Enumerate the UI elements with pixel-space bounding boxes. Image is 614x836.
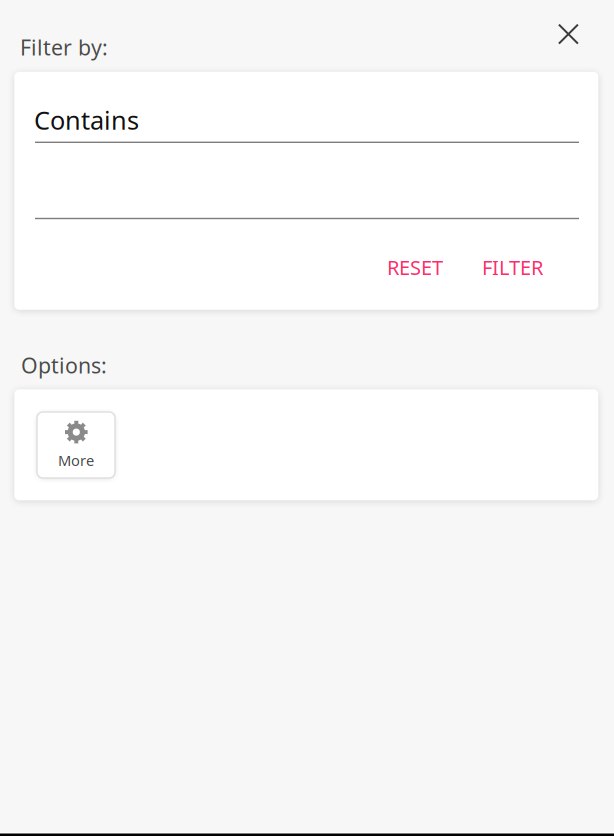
button[interactable]: Close: [544, 10, 592, 58]
staticText: Options:: [21, 351, 107, 379]
button[interactable]: More: [37, 412, 115, 478]
staticText: More: [58, 450, 94, 470]
button[interactable]: RESET: [374, 243, 456, 292]
button[interactable]: FILTER: [469, 243, 556, 292]
staticText: Filter by:: [20, 33, 108, 61]
staticText: RESET: [387, 254, 443, 281]
staticText: FILTER: [482, 254, 543, 281]
staticText: Contains: [34, 103, 139, 137]
